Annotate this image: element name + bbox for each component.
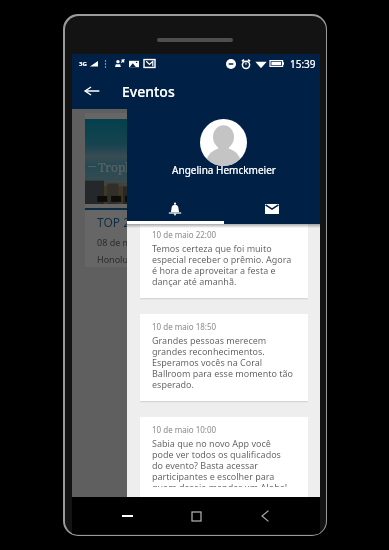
staticText: Angelina Hemckmeier bbox=[172, 163, 276, 177]
staticText: TOP 2018 bbox=[97, 214, 151, 230]
staticText: Temos certeza que foi muito especial rec… bbox=[152, 242, 294, 288]
button[interactable]: Voltar bbox=[251, 502, 279, 530]
button[interactable]: 10 de maio 22:00 bbox=[140, 222, 308, 298]
staticText: 3G bbox=[79, 60, 87, 68]
button[interactable]: 10 de maio 10:00 bbox=[140, 417, 308, 497]
button[interactable]: Mensagens bbox=[223, 194, 320, 224]
button[interactable]: Início bbox=[182, 502, 210, 530]
staticText: Trophy Gala bbox=[98, 159, 169, 175]
staticText: 10 de maio 10:00 bbox=[152, 424, 217, 435]
staticText: Grandes pessoas merecem grandes reconhec… bbox=[152, 334, 294, 391]
staticText: 15:39 bbox=[290, 57, 316, 71]
button[interactable]: 10 de maio 18:50 bbox=[140, 314, 308, 401]
staticText: 10 de maio 22:00 bbox=[152, 229, 217, 240]
staticText: 10 de maio 18:50 bbox=[152, 321, 217, 332]
button[interactable]: Voltar bbox=[77, 76, 107, 106]
button[interactable]: Recentes bbox=[113, 502, 141, 530]
staticText: 08 de maio bbox=[97, 236, 144, 248]
staticText: Honolulu bbox=[97, 253, 136, 265]
staticText: Eventos bbox=[122, 82, 175, 101]
staticText: Sabia que no novo App você pode ver todo… bbox=[152, 437, 294, 487]
button[interactable]: Notificações bbox=[127, 194, 223, 224]
